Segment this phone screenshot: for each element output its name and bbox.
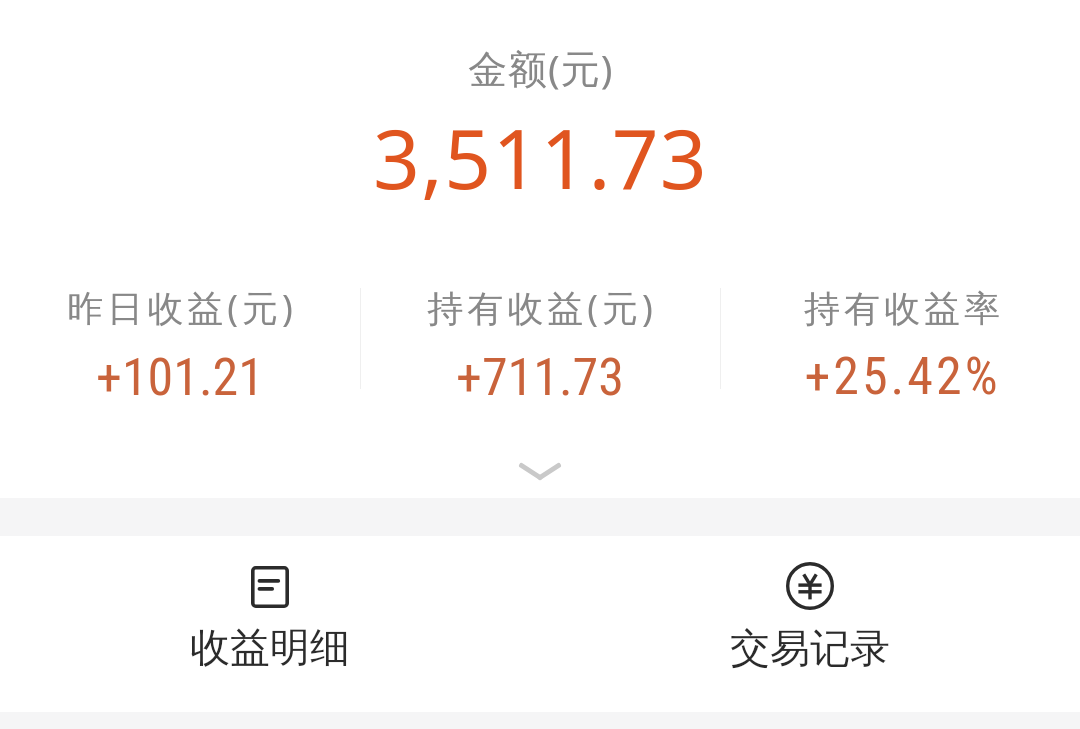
button[interactable]: 持有收益(元) xyxy=(360,283,720,399)
staticText: 持有收益率 xyxy=(802,286,1002,331)
staticText: +101.21 xyxy=(96,347,264,399)
button[interactable]: 收益明细 xyxy=(0,536,540,712)
staticText: +25.42% xyxy=(804,346,1001,402)
button[interactable]: Expand xyxy=(490,453,590,489)
button[interactable]: 交易记录 xyxy=(540,536,1080,712)
staticText: 金额(元) xyxy=(468,41,614,94)
staticText: +711.73 xyxy=(456,347,624,399)
staticText: 3,511.73 xyxy=(373,101,708,213)
button[interactable]: 昨日收益(元) xyxy=(0,283,360,399)
staticText: 收益明细 xyxy=(190,622,350,672)
staticText: 交易记录 xyxy=(730,623,890,673)
button[interactable]: 持有收益率 xyxy=(720,283,1080,399)
staticText: 昨日收益(元) xyxy=(67,283,297,332)
staticText: 持有收益(元) xyxy=(427,283,657,332)
